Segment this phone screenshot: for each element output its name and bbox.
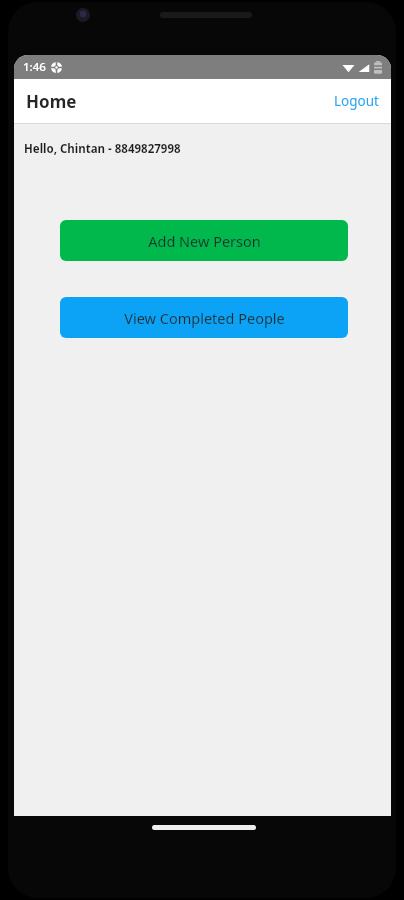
staticText: View Completed People	[124, 308, 285, 328]
button[interactable]: View Completed People	[60, 297, 348, 338]
staticText: Hello, Chintan - 8849827998	[24, 141, 181, 157]
staticText: Add New Person	[148, 231, 261, 251]
button[interactable]: Logout	[322, 84, 391, 118]
button[interactable]: Add New Person	[60, 220, 348, 261]
button[interactable]: Home	[24, 86, 79, 117]
staticText: Home	[26, 90, 77, 113]
staticText: 1:46	[23, 59, 46, 75]
staticText: Logout	[334, 92, 379, 110]
